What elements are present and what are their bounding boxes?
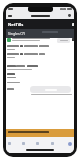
button[interactable] [36,142,39,145]
button[interactable] [68,142,72,146]
staticText: Singles (7) [8,31,25,36]
button[interactable] [6,29,74,38]
button[interactable] [8,142,11,145]
button[interactable] [7,38,11,42]
button[interactable] [30,86,71,93]
staticText: NetTills [8,22,24,27]
button[interactable] [57,38,70,43]
button[interactable] [22,142,25,145]
button[interactable] [51,142,54,145]
button[interactable] [6,19,74,29]
button[interactable] [6,129,74,138]
